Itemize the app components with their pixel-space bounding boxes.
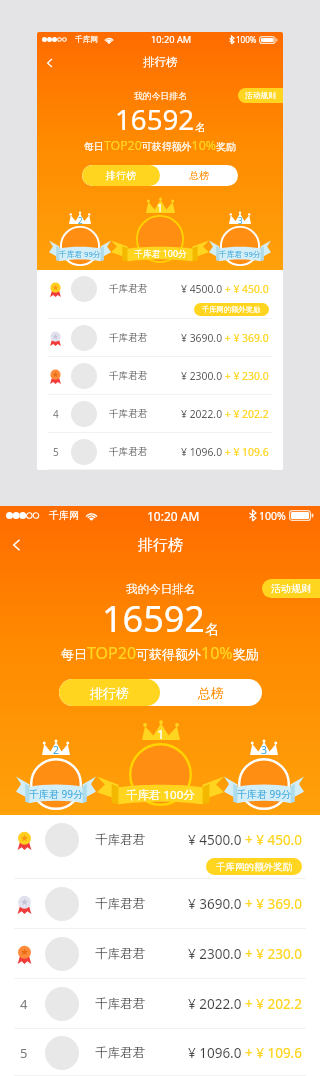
button[interactable]: Back bbox=[40, 53, 60, 73]
staticText: 16592 bbox=[102, 594, 205, 643]
staticText: 活动规则 bbox=[271, 582, 311, 595]
button[interactable]: 5 bbox=[37, 433, 283, 470]
staticText: ¥ 2022.0 + ¥ 202.2 bbox=[188, 995, 302, 1013]
button[interactable]: 总榜 bbox=[160, 679, 262, 706]
button[interactable]: 4 bbox=[37, 395, 283, 433]
staticText: 100% bbox=[259, 509, 286, 523]
button[interactable]: 4 bbox=[0, 979, 320, 1029]
staticText: ¥ 1096.0 + ¥ 109.6 bbox=[181, 445, 269, 459]
button[interactable]: 千库君君 bbox=[0, 815, 320, 879]
staticText: 千库君君 bbox=[95, 946, 145, 962]
staticText: 1 bbox=[157, 725, 165, 743]
staticText: ¥ 1096.0 + ¥ 109.6 bbox=[188, 1044, 302, 1062]
button[interactable]: 排行榜 bbox=[82, 165, 160, 186]
button[interactable]: Rank 1 bbox=[97, 715, 224, 815]
staticText: 千库君君 bbox=[109, 446, 148, 458]
staticText: 1 bbox=[157, 201, 163, 215]
staticText: 4 bbox=[53, 407, 59, 421]
staticText: ¥ 4500.0 + ¥ 450.0 bbox=[188, 831, 302, 849]
staticText: 千库君君 bbox=[95, 996, 145, 1012]
staticText: 排行榜 bbox=[90, 685, 129, 701]
button[interactable]: Rank 2 bbox=[49, 193, 111, 270]
staticText: ¥ 2022.0 + ¥ 202.2 bbox=[181, 407, 269, 421]
button[interactable]: Rank 1 bbox=[111, 193, 209, 270]
button[interactable]: 千库君君 bbox=[37, 319, 283, 357]
staticText: 100% bbox=[236, 34, 257, 45]
staticText: 4 bbox=[20, 995, 28, 1013]
staticText: 排行榜 bbox=[106, 169, 136, 182]
button[interactable]: Rank 3 bbox=[209, 193, 271, 270]
staticText: 总榜 bbox=[189, 169, 209, 182]
staticText: 16592 bbox=[115, 100, 195, 138]
button[interactable]: 5 bbox=[0, 1029, 320, 1076]
button[interactable]: Back bbox=[4, 532, 30, 558]
button[interactable]: 活动规则 bbox=[262, 579, 320, 598]
staticText: 千库君君 bbox=[95, 1045, 145, 1061]
button[interactable]: 千库君君 bbox=[0, 879, 320, 929]
staticText: 千库网 bbox=[49, 509, 79, 522]
staticText: 排行榜 bbox=[138, 536, 183, 555]
staticText: 千库君 100分 bbox=[134, 248, 187, 260]
staticText: 10:20 AM bbox=[147, 508, 200, 524]
button[interactable]: 千库网的额外奖励 bbox=[206, 858, 302, 875]
staticText: 千库君 100分 bbox=[126, 787, 195, 803]
staticText: 名 bbox=[205, 621, 219, 639]
button[interactable]: 活动规则 bbox=[238, 88, 283, 103]
staticText: 10:20 AM bbox=[151, 33, 192, 46]
button[interactable]: 排行榜 bbox=[59, 679, 160, 706]
staticText: 千库君 99分 bbox=[219, 249, 261, 260]
staticText: 5 bbox=[53, 445, 59, 459]
staticText: 千库网的额外奖励 bbox=[216, 861, 292, 873]
staticText: 每日TOP20可获得额外10%奖励 bbox=[61, 642, 259, 664]
staticText: 千库君 99分 bbox=[237, 787, 292, 801]
staticText: 每日TOP20可获得额外10%奖励 bbox=[84, 137, 236, 154]
staticText: 千库网的额外奖励 bbox=[202, 305, 261, 314]
staticText: ¥ 3690.0 + ¥ 369.0 bbox=[181, 331, 269, 345]
staticText: 5 bbox=[20, 1044, 28, 1062]
staticText: 活动规则 bbox=[245, 91, 276, 101]
staticText: 千库君君 bbox=[95, 832, 145, 848]
staticText: 2 bbox=[78, 215, 83, 226]
staticText: 千库君君 bbox=[109, 332, 148, 344]
staticText: 千库君君 bbox=[109, 370, 148, 382]
staticText: 千库君君 bbox=[109, 408, 148, 420]
staticText: 2 bbox=[53, 743, 60, 757]
staticText: ¥ 4500.0 + ¥ 450.0 bbox=[181, 282, 269, 296]
button[interactable]: 总榜 bbox=[160, 165, 238, 186]
staticText: 千库网 bbox=[75, 35, 99, 45]
staticText: 3 bbox=[261, 743, 268, 757]
button[interactable]: 千库网的额外奖励 bbox=[194, 303, 269, 316]
staticText: 千库君 99分 bbox=[59, 249, 101, 260]
staticText: 千库君君 bbox=[95, 896, 145, 912]
button[interactable]: 千库君君 bbox=[37, 357, 283, 395]
staticText: 名 bbox=[195, 121, 206, 135]
staticText: ¥ 2300.0 + ¥ 230.0 bbox=[181, 369, 269, 383]
button[interactable]: Rank 2 bbox=[16, 715, 96, 815]
button[interactable]: 千库君君 bbox=[37, 270, 283, 319]
staticText: 3 bbox=[238, 215, 243, 226]
button[interactable]: Rank 3 bbox=[224, 715, 304, 815]
staticText: 总榜 bbox=[198, 685, 224, 701]
staticText: ¥ 3690.0 + ¥ 369.0 bbox=[188, 895, 302, 913]
staticText: 千库君 99分 bbox=[29, 787, 84, 801]
staticText: 千库君君 bbox=[109, 283, 148, 295]
button[interactable]: 千库君君 bbox=[0, 929, 320, 979]
staticText: 我的今日排名 bbox=[134, 90, 187, 101]
staticText: 我的今日排名 bbox=[126, 582, 195, 596]
staticText: 排行榜 bbox=[143, 55, 178, 70]
staticText: ¥ 2300.0 + ¥ 230.0 bbox=[188, 945, 302, 963]
